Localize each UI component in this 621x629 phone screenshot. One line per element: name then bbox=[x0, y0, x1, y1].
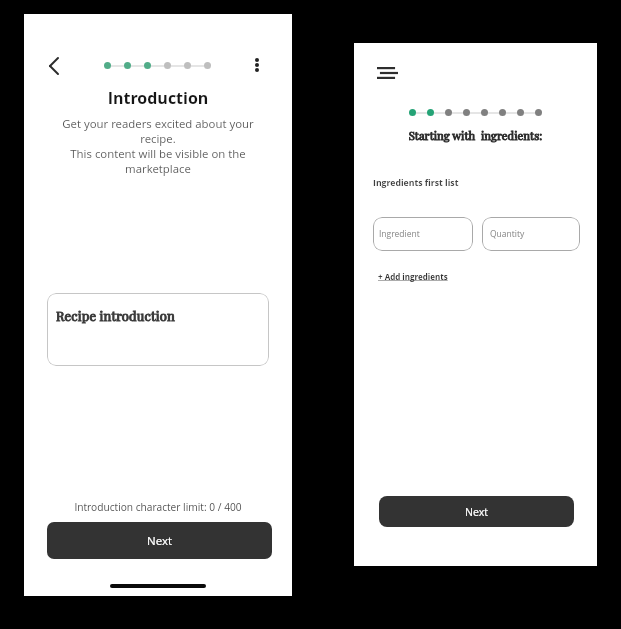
staticText: Recipe introduction bbox=[56, 307, 269, 324]
staticText: Ingredient bbox=[379, 228, 420, 240]
staticText: Ingredients first list bbox=[373, 177, 459, 189]
button[interactable]: Ingredient bbox=[373, 217, 473, 251]
button[interactable]: Menu bbox=[370, 56, 404, 90]
button[interactable]: Back bbox=[37, 50, 69, 82]
button[interactable]: Next bbox=[47, 522, 272, 559]
staticText: + Add ingredients bbox=[378, 271, 448, 282]
button[interactable]: More options bbox=[241, 49, 273, 81]
staticText: Next bbox=[465, 505, 489, 519]
button[interactable]: + Add ingredients bbox=[378, 271, 448, 282]
staticText: Starting with ingredients: bbox=[354, 128, 597, 143]
staticText: Introduction character limit: 0 / 400 bbox=[24, 500, 292, 514]
staticText: Starting with ingredients: bbox=[354, 128, 597, 143]
staticText: Get your readers excited about your reci… bbox=[45, 116, 271, 176]
button[interactable]: Next bbox=[379, 496, 574, 527]
button[interactable]: Recipe introduction bbox=[47, 293, 269, 366]
staticText: Next bbox=[147, 533, 172, 549]
staticText: Introduction bbox=[24, 87, 292, 109]
button[interactable]: Quantity bbox=[482, 217, 580, 251]
staticText: Quantity bbox=[490, 228, 525, 240]
staticText: Recipe introduction bbox=[56, 307, 269, 324]
